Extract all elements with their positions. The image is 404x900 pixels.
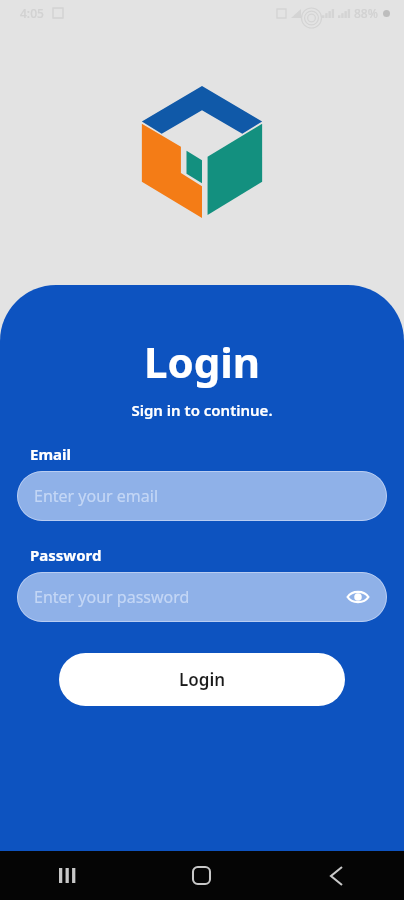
button[interactable]: Back: [269, 851, 404, 900]
button[interactable]: Login: [59, 653, 345, 706]
staticText: Login: [0, 333, 404, 390]
staticText: 4:05: [20, 5, 44, 21]
staticText: 88%: [354, 5, 378, 21]
button[interactable]: Enter your email: [17, 471, 387, 521]
button[interactable]: Recent apps: [0, 851, 134, 900]
button[interactable]: Home: [134, 851, 269, 900]
staticText: Email: [30, 444, 71, 464]
staticText: Sign in to continue.: [0, 400, 404, 420]
staticText: Enter your email: [34, 485, 159, 507]
button[interactable]: Enter your password: [17, 572, 387, 622]
staticText: Enter your password: [34, 586, 190, 608]
staticText: Login: [179, 668, 226, 691]
staticText: Password: [30, 545, 102, 565]
button[interactable]: Show password: [341, 580, 375, 614]
